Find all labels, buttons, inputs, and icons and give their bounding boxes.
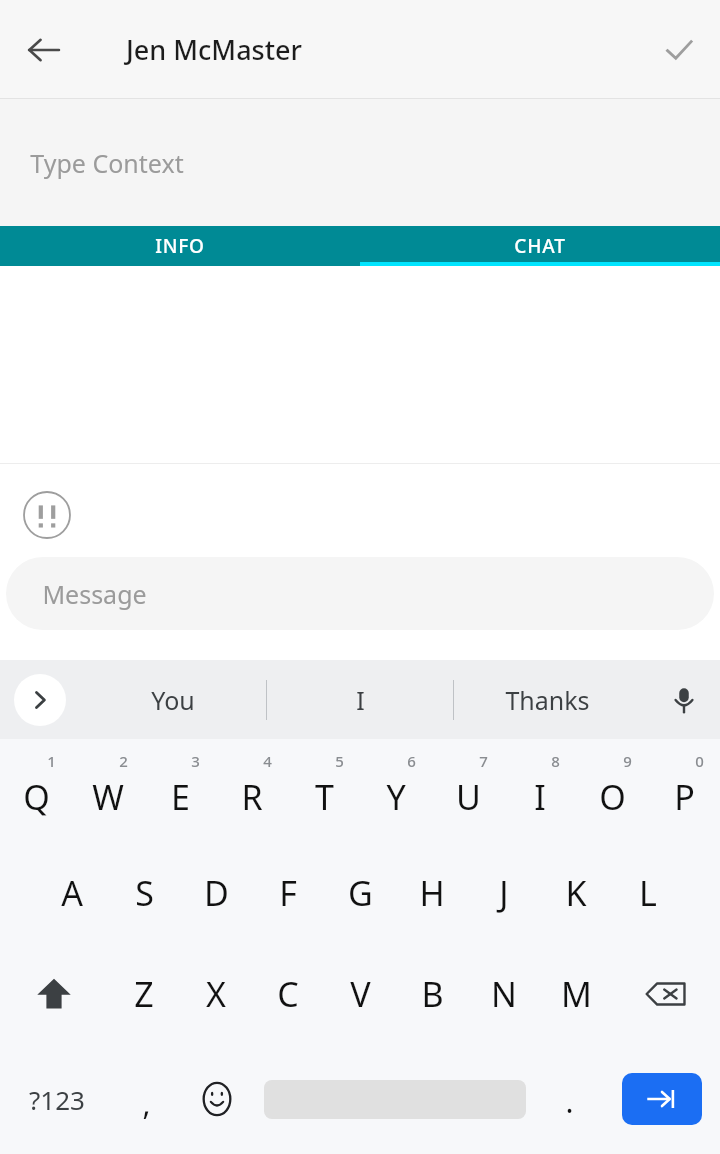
staticText: L xyxy=(639,870,657,916)
button[interactable]: . xyxy=(536,1044,603,1154)
staticText: S xyxy=(135,870,154,916)
button[interactable]: Shift xyxy=(0,943,108,1044)
button[interactable]: Z xyxy=(108,943,180,1044)
staticText: Jen McMaster xyxy=(126,31,302,68)
button[interactable]: S xyxy=(108,842,180,943)
button[interactable]: L xyxy=(612,842,684,943)
button[interactable]: Priority xyxy=(23,491,71,539)
button[interactable]: Backspace xyxy=(612,943,720,1044)
button[interactable]: 1 xyxy=(0,739,72,842)
staticText: Y xyxy=(386,774,406,820)
button[interactable]: 9 xyxy=(576,739,648,842)
button[interactable]: J xyxy=(468,842,540,943)
staticText: 8 xyxy=(551,751,560,771)
button[interactable]: G xyxy=(324,842,396,943)
staticText: , xyxy=(142,1083,151,1124)
button[interactable]: 5 xyxy=(288,739,360,842)
staticText: U xyxy=(456,774,481,820)
button[interactable]: B xyxy=(396,943,468,1044)
button[interactable]: M xyxy=(540,943,612,1044)
staticText: Message xyxy=(42,577,147,611)
staticText: C xyxy=(277,971,299,1017)
staticText: N xyxy=(491,971,517,1017)
button[interactable]: 8 xyxy=(504,739,576,842)
button[interactable]: Emoji xyxy=(180,1044,254,1154)
button[interactable]: 6 xyxy=(360,739,432,842)
staticText: 6 xyxy=(407,751,416,771)
staticText: H xyxy=(419,870,445,916)
button[interactable]: A xyxy=(36,842,108,943)
button[interactable]: You xyxy=(80,660,266,739)
button[interactable]: 3 xyxy=(144,739,216,842)
staticText: T xyxy=(315,774,334,820)
staticText: Q xyxy=(23,774,50,820)
staticText: 5 xyxy=(335,751,344,771)
button[interactable]: INFO xyxy=(0,226,360,266)
staticText: W xyxy=(92,774,124,820)
button[interactable]: V xyxy=(324,943,396,1044)
button[interactable]: 2 xyxy=(72,739,144,842)
button[interactable]: D xyxy=(180,842,252,943)
staticText: E xyxy=(171,774,190,820)
staticText: M xyxy=(561,971,592,1017)
staticText: G xyxy=(348,870,373,916)
button[interactable]: H xyxy=(396,842,468,943)
staticText: 4 xyxy=(263,751,272,771)
staticText: Type Context xyxy=(30,146,184,180)
button[interactable]: F xyxy=(252,842,324,943)
staticText: INFO xyxy=(155,233,205,259)
button[interactable]: CHAT xyxy=(360,226,720,266)
button[interactable]: I xyxy=(267,660,453,739)
staticText: A xyxy=(61,870,83,916)
staticText: D xyxy=(204,870,229,916)
staticText: 9 xyxy=(623,751,632,771)
staticText: R xyxy=(241,774,263,820)
button[interactable]: 7 xyxy=(432,739,504,842)
button[interactable]: Space xyxy=(254,1044,536,1154)
staticText: 3 xyxy=(191,751,200,771)
button[interactable]: ?123 xyxy=(0,1044,113,1154)
staticText: I xyxy=(356,683,365,717)
button[interactable]: 0 xyxy=(648,739,720,842)
staticText: 2 xyxy=(119,751,128,771)
staticText: V xyxy=(350,971,371,1017)
button[interactable]: N xyxy=(468,943,540,1044)
button[interactable]: K xyxy=(540,842,612,943)
staticText: I xyxy=(534,774,546,820)
staticText: . xyxy=(565,1081,574,1122)
staticText: X xyxy=(206,971,226,1017)
staticText: O xyxy=(599,774,626,820)
staticText: J xyxy=(499,870,509,916)
button[interactable]: Thanks xyxy=(454,660,640,739)
button[interactable]: Enter xyxy=(603,1044,720,1154)
staticText: CHAT xyxy=(514,233,566,259)
staticText: ?123 xyxy=(29,1082,85,1117)
staticText: P xyxy=(674,774,695,820)
button[interactable]: Message xyxy=(6,557,714,630)
staticText: 7 xyxy=(479,751,488,771)
button[interactable]: Back xyxy=(12,18,76,82)
staticText: F xyxy=(279,870,297,916)
button[interactable]: Done xyxy=(648,19,710,81)
button[interactable]: Type Context xyxy=(0,99,720,226)
staticText: B xyxy=(421,971,444,1017)
staticText: Thanks xyxy=(505,683,590,717)
button[interactable]: Voice input xyxy=(659,675,709,725)
staticText: K xyxy=(565,870,587,916)
button[interactable]: Expand suggestions xyxy=(14,674,66,726)
staticText: Z xyxy=(134,971,154,1017)
button[interactable]: X xyxy=(180,943,252,1044)
button[interactable]: C xyxy=(252,943,324,1044)
button[interactable]: , xyxy=(113,1044,180,1154)
staticText: You xyxy=(151,683,195,717)
staticText: 0 xyxy=(695,751,704,771)
button[interactable]: 4 xyxy=(216,739,288,842)
staticText: 1 xyxy=(47,751,56,771)
